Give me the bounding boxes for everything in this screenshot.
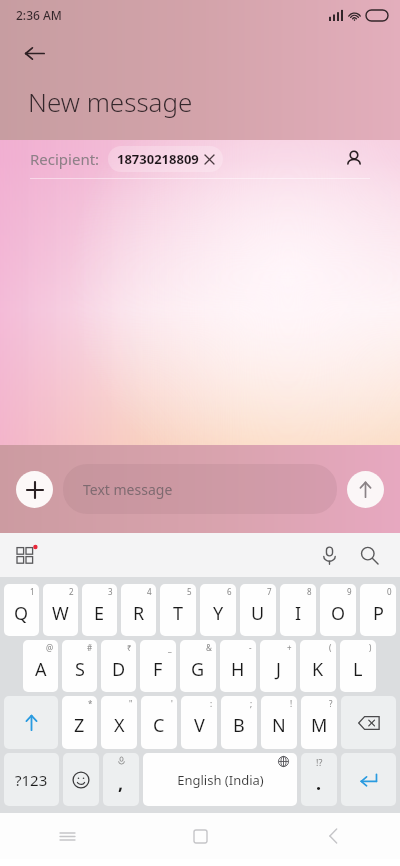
staticText: ": [129, 698, 133, 709]
button[interactable]: (: [300, 640, 336, 692]
button[interactable]: Search: [352, 538, 386, 572]
button[interactable]: 7: [240, 584, 276, 636]
button[interactable]: ₹: [101, 640, 136, 692]
staticText: D: [112, 657, 126, 682]
staticText: 3: [108, 586, 113, 597]
button[interactable]: Recents: [0, 813, 134, 859]
staticText: O: [331, 601, 346, 626]
staticText: I: [295, 601, 302, 626]
staticText: G: [191, 657, 205, 682]
staticText: 4: [147, 586, 152, 597]
staticText: Recipient:: [30, 149, 100, 169]
button[interactable]: Backspace: [341, 696, 396, 749]
staticText: B: [233, 713, 245, 738]
button[interactable]: Comma: [103, 753, 139, 806]
button[interactable]: Attach: [16, 471, 53, 508]
staticText: H: [231, 657, 245, 682]
staticText: E: [94, 601, 105, 626]
staticText: ₹: [127, 642, 132, 653]
staticText: ': [171, 698, 173, 709]
button[interactable]: 2: [43, 584, 78, 636]
button[interactable]: !: [261, 696, 297, 749]
button[interactable]: Keyboard menu: [10, 538, 44, 572]
button[interactable]: 1: [4, 584, 39, 636]
staticText: *: [88, 698, 93, 709]
button[interactable]: *: [62, 696, 97, 749]
staticText: +: [287, 642, 292, 653]
button[interactable]: 6: [200, 584, 236, 636]
button[interactable]: ?123: [4, 753, 59, 806]
staticText: #: [87, 642, 93, 653]
staticText: F: [153, 657, 163, 682]
staticText: 2: [69, 586, 74, 597]
button[interactable]: Text message: [63, 464, 337, 514]
staticText: 6: [227, 586, 232, 597]
staticText: Y: [213, 601, 224, 626]
button[interactable]: ": [101, 696, 137, 749]
staticText: ?: [329, 698, 333, 709]
button[interactable]: :: [181, 696, 217, 749]
button[interactable]: Shift: [4, 696, 58, 749]
staticText: :: [210, 698, 213, 709]
staticText: ): [369, 642, 372, 653]
staticText: 0: [387, 586, 392, 597]
staticText: 5: [187, 586, 192, 597]
button[interactable]: Period: [301, 753, 337, 806]
button[interactable]: Home: [134, 813, 267, 859]
staticText: ,: [118, 771, 124, 796]
staticText: R: [133, 601, 145, 626]
staticText: Q: [14, 601, 29, 626]
staticText: -: [249, 642, 252, 653]
button[interactable]: 5: [160, 584, 196, 636]
button[interactable]: #: [62, 640, 97, 692]
button[interactable]: 9: [320, 584, 356, 636]
button[interactable]: +: [260, 640, 296, 692]
staticText: N: [272, 713, 286, 738]
button[interactable]: _: [140, 640, 176, 692]
staticText: !?: [316, 756, 323, 768]
staticText: X: [114, 713, 125, 738]
button[interactable]: -: [220, 640, 256, 692]
button[interactable]: English (India): [143, 753, 297, 806]
staticText: 2:36 AM: [16, 7, 62, 23]
staticText: L: [353, 657, 363, 682]
staticText: English (India): [177, 771, 264, 789]
button[interactable]: Enter: [341, 753, 396, 806]
button[interactable]: Emoji: [63, 753, 99, 806]
button[interactable]: Add contact: [338, 143, 370, 175]
button[interactable]: Back: [267, 813, 400, 859]
button[interactable]: @: [23, 640, 58, 692]
staticText: V: [194, 713, 205, 738]
staticText: ;: [250, 698, 253, 709]
staticText: J: [276, 657, 281, 682]
staticText: 9: [347, 586, 352, 597]
button[interactable]: 3: [82, 584, 117, 636]
staticText: K: [312, 657, 324, 682]
staticText: ?123: [15, 770, 48, 790]
staticText: W: [52, 601, 69, 626]
staticText: A: [35, 657, 47, 682]
button[interactable]: Back: [14, 33, 54, 73]
staticText: M: [311, 713, 328, 738]
staticText: .: [316, 771, 322, 796]
button[interactable]: &: [180, 640, 216, 692]
staticText: New message: [28, 84, 193, 119]
staticText: 7: [267, 586, 272, 597]
button[interactable]: ): [340, 640, 376, 692]
staticText: 18730218809: [117, 150, 199, 168]
button[interactable]: 8: [280, 584, 316, 636]
button[interactable]: ;: [221, 696, 257, 749]
button[interactable]: 18730218809: [108, 146, 223, 172]
button[interactable]: 4: [121, 584, 156, 636]
staticText: S: [75, 657, 85, 682]
staticText: C: [153, 713, 165, 738]
staticText: _: [168, 642, 172, 653]
staticText: Text message: [83, 480, 173, 499]
button[interactable]: ': [141, 696, 177, 749]
button[interactable]: Voice input: [312, 538, 346, 572]
button[interactable]: 0: [360, 584, 396, 636]
button[interactable]: ?: [301, 696, 337, 749]
staticText: U: [251, 601, 265, 626]
staticText: !: [290, 698, 293, 709]
button[interactable]: Send: [347, 471, 384, 508]
